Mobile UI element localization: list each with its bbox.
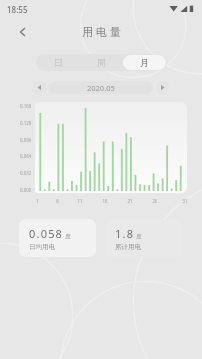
staticText: 0.058 [29, 226, 64, 241]
staticText: 16 [102, 198, 107, 204]
staticText: 0.096 [20, 137, 32, 143]
button[interactable]: 周 [80, 55, 123, 70]
button[interactable]: 日 [37, 55, 80, 70]
staticText: 0.128 [20, 120, 32, 126]
button[interactable]: Previous month [33, 81, 46, 94]
button[interactable]: 月 [123, 55, 166, 70]
staticText: 21 [127, 198, 132, 204]
staticText: 11 [77, 198, 82, 204]
button[interactable]: 1.8 [105, 219, 183, 257]
staticText: 18:55 [7, 4, 28, 15]
staticText: 2020.05 [87, 83, 115, 93]
staticText: 度 [136, 233, 142, 240]
staticText: 0.160 [20, 103, 32, 109]
staticText: 0.000 [20, 187, 32, 193]
staticText: 0.032 [20, 170, 32, 176]
button[interactable]: Back [12, 21, 34, 43]
staticText: 日 [54, 57, 63, 68]
button[interactable]: 0.058 [19, 219, 96, 257]
staticText: 6 [56, 198, 59, 204]
staticText: 度 [65, 233, 71, 240]
staticText: 31(日) [182, 198, 187, 204]
staticText: 1 [36, 198, 39, 204]
staticText: 周 [97, 57, 106, 68]
staticText: 月 [140, 57, 149, 68]
staticText: 0.064 [20, 153, 32, 159]
staticText: 26 [152, 198, 157, 204]
staticText: 日均用电 [29, 243, 55, 251]
staticText: 累计用电 [115, 243, 141, 251]
staticText: 1.8 [115, 226, 135, 241]
staticText: 用 电 量 [82, 24, 121, 39]
button[interactable]: Next month [156, 81, 169, 94]
button[interactable]: 2020.05 [49, 81, 153, 94]
